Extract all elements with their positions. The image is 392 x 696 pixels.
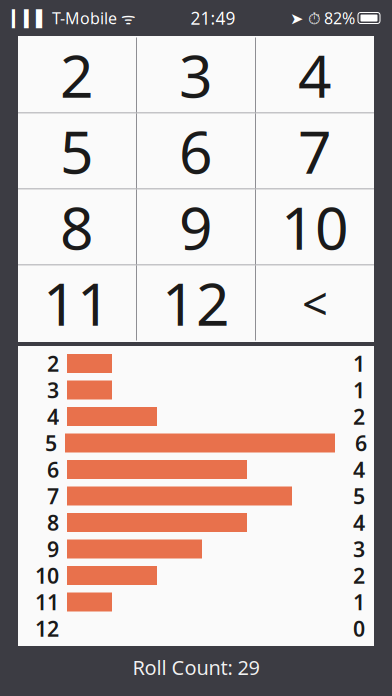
staticText: 10 bbox=[281, 188, 349, 266]
staticText: 1 bbox=[353, 349, 365, 378]
button[interactable]: 2 bbox=[18, 37, 136, 112]
button[interactable]: 6 bbox=[137, 113, 255, 188]
button[interactable]: 9 bbox=[137, 189, 255, 264]
staticText: 2 bbox=[47, 349, 59, 378]
staticText: 21:49 bbox=[190, 6, 235, 29]
staticText: 3 bbox=[179, 36, 213, 114]
staticText: ➤ ⏱ 82% bbox=[290, 7, 355, 29]
staticText: < bbox=[302, 273, 328, 333]
button[interactable]: 4 bbox=[256, 37, 374, 112]
staticText: 4 bbox=[298, 36, 332, 114]
staticText: 5 bbox=[353, 482, 365, 510]
button[interactable]: 10 bbox=[256, 189, 374, 264]
staticText: 6 bbox=[355, 429, 367, 457]
staticText: 1 bbox=[353, 376, 365, 404]
staticText: 0 bbox=[353, 614, 365, 643]
staticText: 4 bbox=[47, 402, 59, 431]
staticText: 10 bbox=[35, 561, 59, 590]
staticText: 8 bbox=[47, 508, 59, 537]
staticText: 9 bbox=[47, 535, 59, 563]
staticText: ᯤ bbox=[117, 7, 136, 29]
staticText: ▎▍▌ T-Mobile bbox=[12, 7, 117, 29]
staticText: 6 bbox=[47, 455, 59, 484]
staticText: 7 bbox=[298, 112, 332, 190]
staticText: 5 bbox=[60, 112, 94, 190]
staticText: 9 bbox=[179, 188, 213, 266]
staticText: 5 bbox=[45, 429, 57, 457]
staticText: 12 bbox=[162, 264, 230, 342]
button[interactable]: Back bbox=[256, 265, 374, 340]
staticText: 12 bbox=[35, 614, 59, 643]
button[interactable]: 5 bbox=[18, 113, 136, 188]
staticText: 8 bbox=[60, 188, 94, 266]
staticText: 2 bbox=[353, 402, 365, 431]
staticText: 4 bbox=[353, 455, 365, 484]
staticText: 2 bbox=[60, 36, 94, 114]
staticText: 4 bbox=[353, 508, 365, 537]
button[interactable]: 12 bbox=[137, 265, 255, 340]
staticText: 6 bbox=[179, 112, 213, 190]
button[interactable]: 8 bbox=[18, 189, 136, 264]
staticText: 1 bbox=[353, 588, 365, 616]
button[interactable]: 11 bbox=[18, 265, 136, 340]
staticText: 11 bbox=[43, 264, 111, 342]
staticText: 2 bbox=[353, 561, 365, 590]
staticText: 11 bbox=[35, 588, 59, 616]
staticText: 3 bbox=[47, 376, 59, 404]
staticText: 3 bbox=[353, 535, 365, 563]
staticText: 7 bbox=[47, 482, 59, 510]
button[interactable]: 3 bbox=[137, 37, 255, 112]
button[interactable]: 7 bbox=[256, 113, 374, 188]
staticText: Roll Count: 29 bbox=[132, 654, 259, 681]
